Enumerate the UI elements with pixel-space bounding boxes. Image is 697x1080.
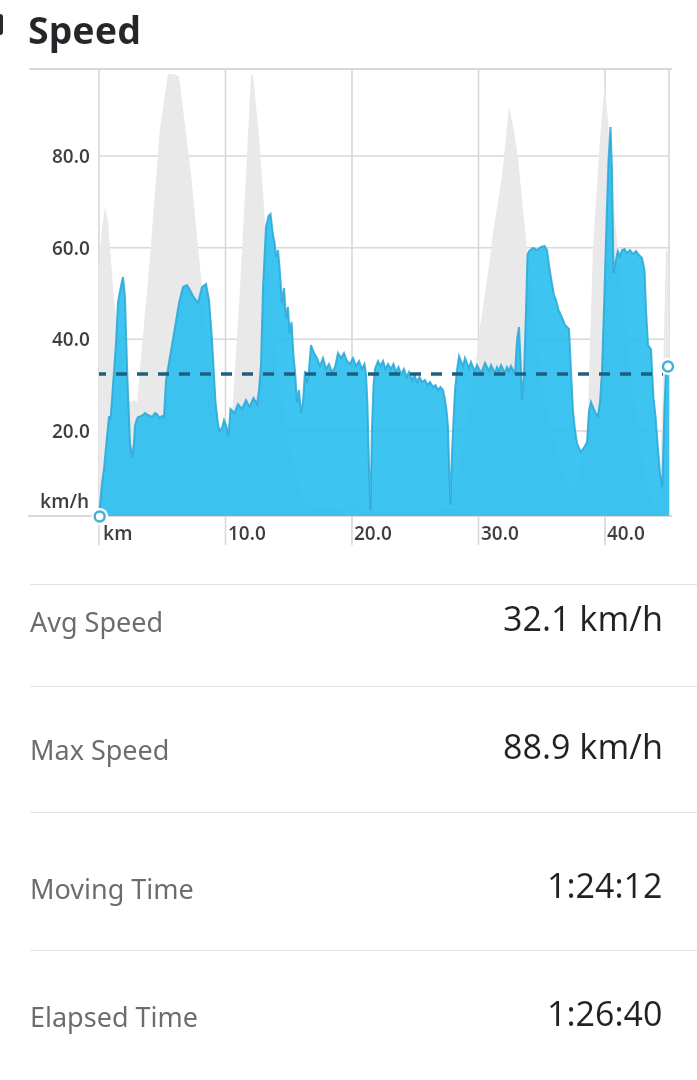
- staticText: 30.0: [481, 520, 519, 546]
- staticText: 1:26:40: [547, 990, 663, 1036]
- staticText: 10.0: [228, 520, 266, 546]
- button[interactable]: Max Speed: [0, 699, 697, 799]
- staticText: 40.0: [52, 326, 90, 352]
- staticText: Avg Speed: [30, 603, 164, 640]
- button[interactable]: Moving Time: [0, 838, 697, 938]
- staticText: 20.0: [354, 520, 392, 546]
- staticText: Moving Time: [30, 870, 194, 907]
- staticText: Elapsed Time: [30, 998, 198, 1035]
- staticText: Max Speed: [30, 731, 170, 768]
- staticText: Speed: [28, 4, 141, 55]
- button[interactable]: 80.0: [0, 0, 697, 560]
- staticText: 88.9 km/h: [503, 723, 663, 769]
- button[interactable]: Elapsed Time: [0, 966, 697, 1066]
- staticText: 32.1 km/h: [503, 595, 663, 641]
- staticText: 20.0: [52, 418, 90, 444]
- staticText: 1:24:12: [547, 862, 663, 908]
- staticText: km/h: [40, 488, 90, 514]
- staticText: 80.0: [52, 143, 90, 169]
- staticText: km: [103, 520, 133, 546]
- staticText: 60.0: [52, 235, 90, 261]
- button[interactable]: Avg Speed: [0, 571, 697, 671]
- staticText: 40.0: [607, 520, 645, 546]
